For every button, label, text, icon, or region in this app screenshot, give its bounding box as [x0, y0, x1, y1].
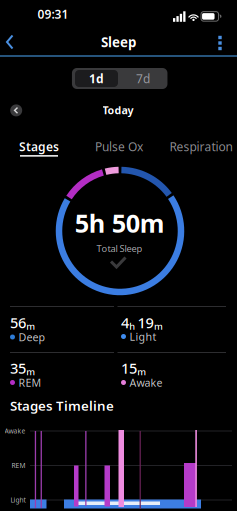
staticText: m	[26, 320, 35, 332]
staticText: Light	[10, 496, 25, 504]
staticText: m	[137, 365, 146, 378]
staticText: Stages Timeline	[10, 397, 114, 414]
button[interactable]: Pulse Ox	[84, 135, 154, 157]
staticText: 7d	[136, 70, 150, 86]
staticText: 5h 50m	[75, 206, 165, 240]
staticText: 56	[10, 313, 26, 332]
button[interactable]: Stages	[4, 135, 74, 157]
button[interactable]: Previous day	[10, 104, 22, 116]
staticText: Light	[129, 329, 156, 344]
staticText: Awake	[129, 375, 162, 390]
staticText: 09:31	[37, 6, 68, 22]
staticText: Deep	[18, 330, 45, 344]
staticText: 19	[138, 313, 154, 332]
button[interactable]: 1d	[75, 70, 118, 87]
staticText: 1d	[89, 70, 104, 86]
button[interactable]: 7d	[121, 70, 164, 87]
staticText: 4	[121, 313, 129, 332]
staticText: h	[129, 320, 137, 332]
staticText: m	[26, 365, 35, 378]
staticText: Awake	[4, 427, 25, 435]
button[interactable]: Respiration	[166, 135, 236, 157]
staticText: Pulse Ox	[95, 138, 143, 154]
staticText: Respiration	[169, 138, 232, 154]
button[interactable]: Back	[0, 28, 28, 56]
staticText: REM	[11, 461, 25, 470]
staticText: m	[154, 320, 163, 332]
staticText: Today	[102, 103, 133, 117]
staticText: Total Sleep	[96, 242, 142, 255]
staticText: REM	[18, 375, 41, 390]
staticText: 35	[10, 358, 26, 378]
staticText: 15	[121, 358, 137, 378]
staticText: Stages	[19, 138, 59, 154]
staticText: Sleep	[101, 33, 136, 51]
button[interactable]: More options	[206, 28, 234, 56]
